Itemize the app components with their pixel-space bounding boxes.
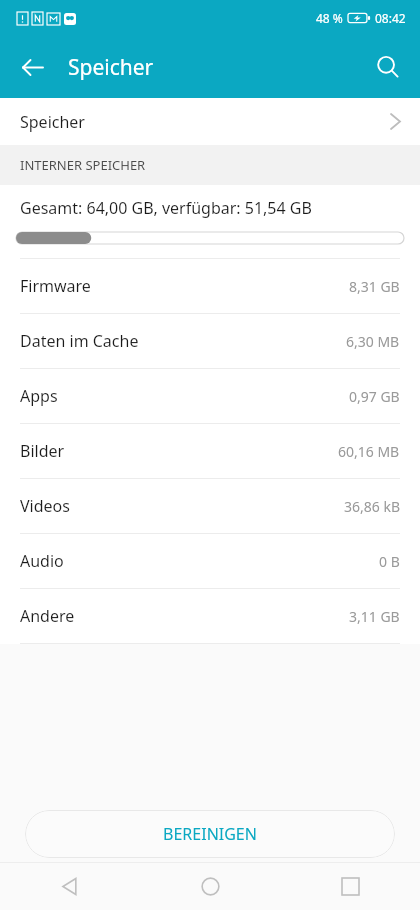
staticText: 6,30 MB [346,332,400,351]
button[interactable]: Back [0,863,140,910]
button[interactable]: Home [140,863,280,910]
button[interactable]: Search [364,43,412,91]
staticText: Speicher [20,111,85,133]
staticText: 0,97 GB [349,387,400,406]
staticText: Daten im Cache [20,330,139,352]
button[interactable]: Andere [0,589,420,644]
button[interactable]: Firmware [0,259,420,314]
button[interactable]: Bilder [0,424,420,479]
staticText: Bilder [20,440,65,462]
staticText: 0 B [379,552,400,571]
staticText: Apps [20,385,58,407]
staticText: INTERNER SPEICHER [20,156,146,174]
staticText: Audio [20,550,64,572]
staticText: Speicher [68,53,154,82]
staticText: 60,16 MB [338,442,400,461]
staticText: 08:42 [375,10,406,26]
staticText: BEREINIGEN [163,823,257,845]
staticText: 3,11 GB [349,607,400,626]
button[interactable]: Back [8,43,56,91]
button[interactable]: BEREINIGEN [25,810,395,858]
staticText: 8,31 GB [349,277,400,296]
button[interactable]: Videos [0,479,420,534]
button[interactable]: Apps [0,369,420,424]
staticText: Firmware [20,275,91,297]
staticText: Andere [20,605,75,627]
staticText: Gesamt: 64,00 GB, verfügbar: 51,54 GB [20,197,312,219]
button[interactable]: Recents [280,863,420,910]
staticText: Videos [20,495,70,517]
staticText: 36,86 kB [344,497,400,516]
button[interactable]: Speicher [0,98,420,145]
button[interactable]: Audio [0,534,420,589]
button[interactable]: Daten im Cache [0,314,420,369]
staticText: 48 % [316,10,343,26]
